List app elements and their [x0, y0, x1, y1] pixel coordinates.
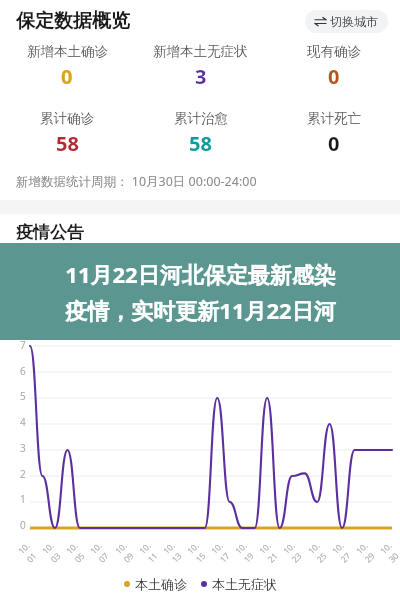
staticText: 10.23: [281, 539, 307, 565]
staticText: 10.30: [378, 539, 400, 565]
staticText: 5: [20, 389, 26, 403]
staticText: 累计确诊: [40, 110, 94, 127]
staticText: 累计死亡: [307, 110, 361, 127]
staticText: 本土确诊: [135, 576, 187, 592]
button[interactable]: 新增: [325, 305, 388, 331]
staticText: 新增数据统计周期： 10月30日 00:00-24:00: [16, 173, 257, 190]
staticText: 新增本土确诊: [27, 43, 108, 60]
staticText: 4: [20, 415, 26, 429]
staticText: 0: [328, 130, 340, 157]
staticText: 6: [20, 364, 26, 378]
staticText: 58: [189, 130, 212, 157]
staticText: 切换城市: [330, 14, 378, 29]
staticText: 10.21: [257, 539, 283, 565]
staticText: 0: [61, 63, 73, 90]
staticText: 10.15: [185, 539, 211, 565]
staticText: 10.13: [161, 539, 187, 565]
staticText: 10.05: [64, 539, 90, 565]
staticText: 10.11: [137, 539, 163, 565]
staticText: 7: [20, 338, 26, 352]
staticText: 0: [328, 63, 340, 90]
staticText: 保定市高碑店市昨增3例本土无症状: [29, 255, 248, 274]
staticText: 3: [20, 441, 26, 455]
button[interactable]: 30 天: [244, 304, 313, 332]
staticText: 累计治愈: [174, 110, 228, 127]
staticText: 58: [56, 130, 79, 157]
staticText: 30 天: [256, 309, 288, 327]
staticText: 10.07: [88, 539, 114, 565]
staticText: 2: [20, 467, 26, 481]
staticText: 10.29: [354, 539, 380, 565]
staticText: 10.27: [330, 539, 356, 565]
staticText: 保定数据概览: [16, 9, 130, 33]
staticText: 新增本土无症状: [153, 43, 248, 60]
staticText: 0: [20, 518, 26, 532]
staticText: 现有确诊: [307, 43, 361, 60]
staticText: 3: [195, 63, 207, 90]
button[interactable]: 切换城市: [305, 10, 388, 33]
staticText: 10.17: [209, 539, 235, 565]
staticText: 10.03: [40, 539, 66, 565]
staticText: 疫情公告: [16, 222, 84, 243]
button[interactable]: 保定市高碑店市昨增3例本土无症状: [0, 255, 400, 274]
staticText: 10.19: [233, 539, 259, 565]
staticText: 本土无症状: [212, 576, 277, 592]
staticText: 10.25: [306, 539, 332, 565]
staticText: 疫情，实时更新11月22日河: [65, 295, 336, 325]
staticText: 11月22日河北保定最新感染: [65, 259, 336, 289]
staticText: 10.01: [16, 539, 42, 565]
staticText: 疫情趋势: [16, 308, 84, 329]
staticText: 10.09: [113, 539, 139, 565]
staticText: 1: [20, 492, 26, 506]
